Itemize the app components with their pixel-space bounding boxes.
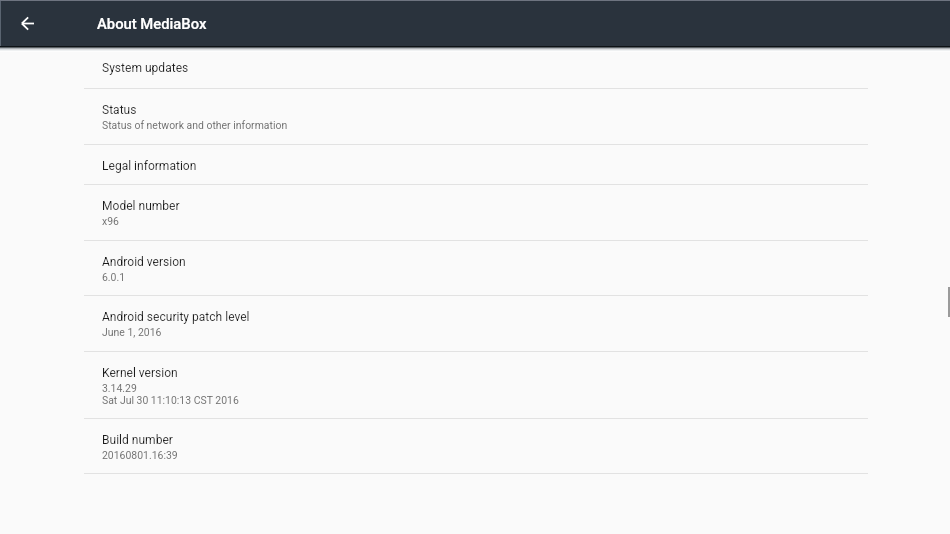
button[interactable]: Kernel version <box>0 352 950 419</box>
staticText: x96 <box>102 215 119 227</box>
button[interactable]: Model number <box>0 185 950 241</box>
button[interactable]: System updates <box>0 47 950 89</box>
staticText: Build number <box>102 433 173 447</box>
button[interactable]: Legal information <box>0 145 950 185</box>
staticText: 6.0.1 <box>102 271 126 283</box>
staticText: Legal information <box>102 159 197 173</box>
button[interactable]: Status <box>0 89 950 145</box>
staticText: Android security patch level <box>102 310 250 324</box>
staticText: 3.14.29 <box>102 382 137 394</box>
staticText: Android version <box>102 255 186 269</box>
button[interactable]: Android version <box>0 241 950 296</box>
staticText: Model number <box>102 199 180 213</box>
button[interactable]: Android security patch level <box>0 296 950 352</box>
staticText: 20160801.16:39 <box>102 449 178 461</box>
staticText: Status <box>102 103 137 117</box>
button[interactable]: Back <box>4 0 51 47</box>
staticText: Status of network and other information <box>102 119 288 131</box>
staticText: Kernel version <box>102 366 178 380</box>
button[interactable]: Build number <box>0 419 950 474</box>
staticText: System updates <box>102 61 189 75</box>
staticText: About MediaBox <box>97 15 207 32</box>
staticText: Sat Jul 30 11:10:13 CST 2016 <box>102 394 239 406</box>
staticText: June 1, 2016 <box>102 326 162 338</box>
